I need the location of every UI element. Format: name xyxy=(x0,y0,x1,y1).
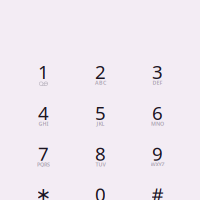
staticText: 2 xyxy=(95,59,106,84)
staticText: ∗ xyxy=(35,184,51,200)
staticText: 6 xyxy=(152,100,163,125)
staticText: 9 xyxy=(152,141,163,166)
button[interactable]: # xyxy=(129,175,186,200)
button[interactable]: 5 xyxy=(72,93,129,134)
button[interactable]: 9 xyxy=(129,134,186,175)
staticText: ABC xyxy=(95,79,106,86)
staticText: 4 xyxy=(38,100,49,125)
staticText: WXYZ xyxy=(150,161,164,168)
button[interactable]: 2 xyxy=(72,52,129,93)
staticText: DEF xyxy=(152,79,162,86)
button[interactable]: 3 xyxy=(129,52,186,93)
button[interactable]: 0 xyxy=(72,175,129,200)
staticText: 1 xyxy=(38,59,49,84)
button[interactable]: 1 xyxy=(15,52,72,93)
button[interactable]: ∗ xyxy=(15,175,72,200)
staticText: MNO xyxy=(151,120,164,127)
button[interactable]: 4 xyxy=(15,93,72,134)
staticText: 3 xyxy=(152,59,163,84)
staticText: TUV xyxy=(95,161,105,168)
staticText: # xyxy=(151,182,163,200)
staticText: 8 xyxy=(95,141,106,166)
button[interactable]: 6 xyxy=(129,93,186,134)
staticText: 7 xyxy=(38,141,49,166)
button[interactable]: 7 xyxy=(15,134,72,175)
staticText: PQRS xyxy=(37,161,50,168)
staticText: 5 xyxy=(95,100,106,125)
staticText: 0 xyxy=(95,182,106,200)
staticText: JKL xyxy=(96,120,104,127)
staticText: GHI xyxy=(38,120,48,127)
button[interactable]: 8 xyxy=(72,134,129,175)
